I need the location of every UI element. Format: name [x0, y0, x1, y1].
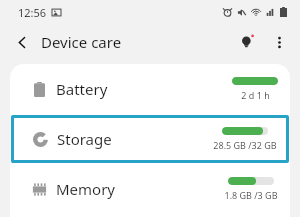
staticText: 28.5 GB /32 GB [213, 139, 277, 151]
button[interactable]: Memory [10, 164, 290, 214]
staticText: 1.8 GB /3 GB [224, 189, 278, 201]
button[interactable]: Storage [11, 115, 289, 163]
staticText: Device care [41, 32, 122, 52]
button[interactable]: More options [266, 29, 292, 55]
staticText: 2 d 1 h [241, 89, 270, 101]
staticText: Storage [57, 129, 112, 149]
staticText: Memory [56, 179, 116, 199]
staticText: Battery [56, 79, 108, 99]
staticText: 12:56 [18, 5, 47, 20]
button[interactable]: Tips [234, 29, 260, 55]
button[interactable]: Back [8, 28, 36, 56]
button[interactable]: Battery [10, 64, 290, 114]
